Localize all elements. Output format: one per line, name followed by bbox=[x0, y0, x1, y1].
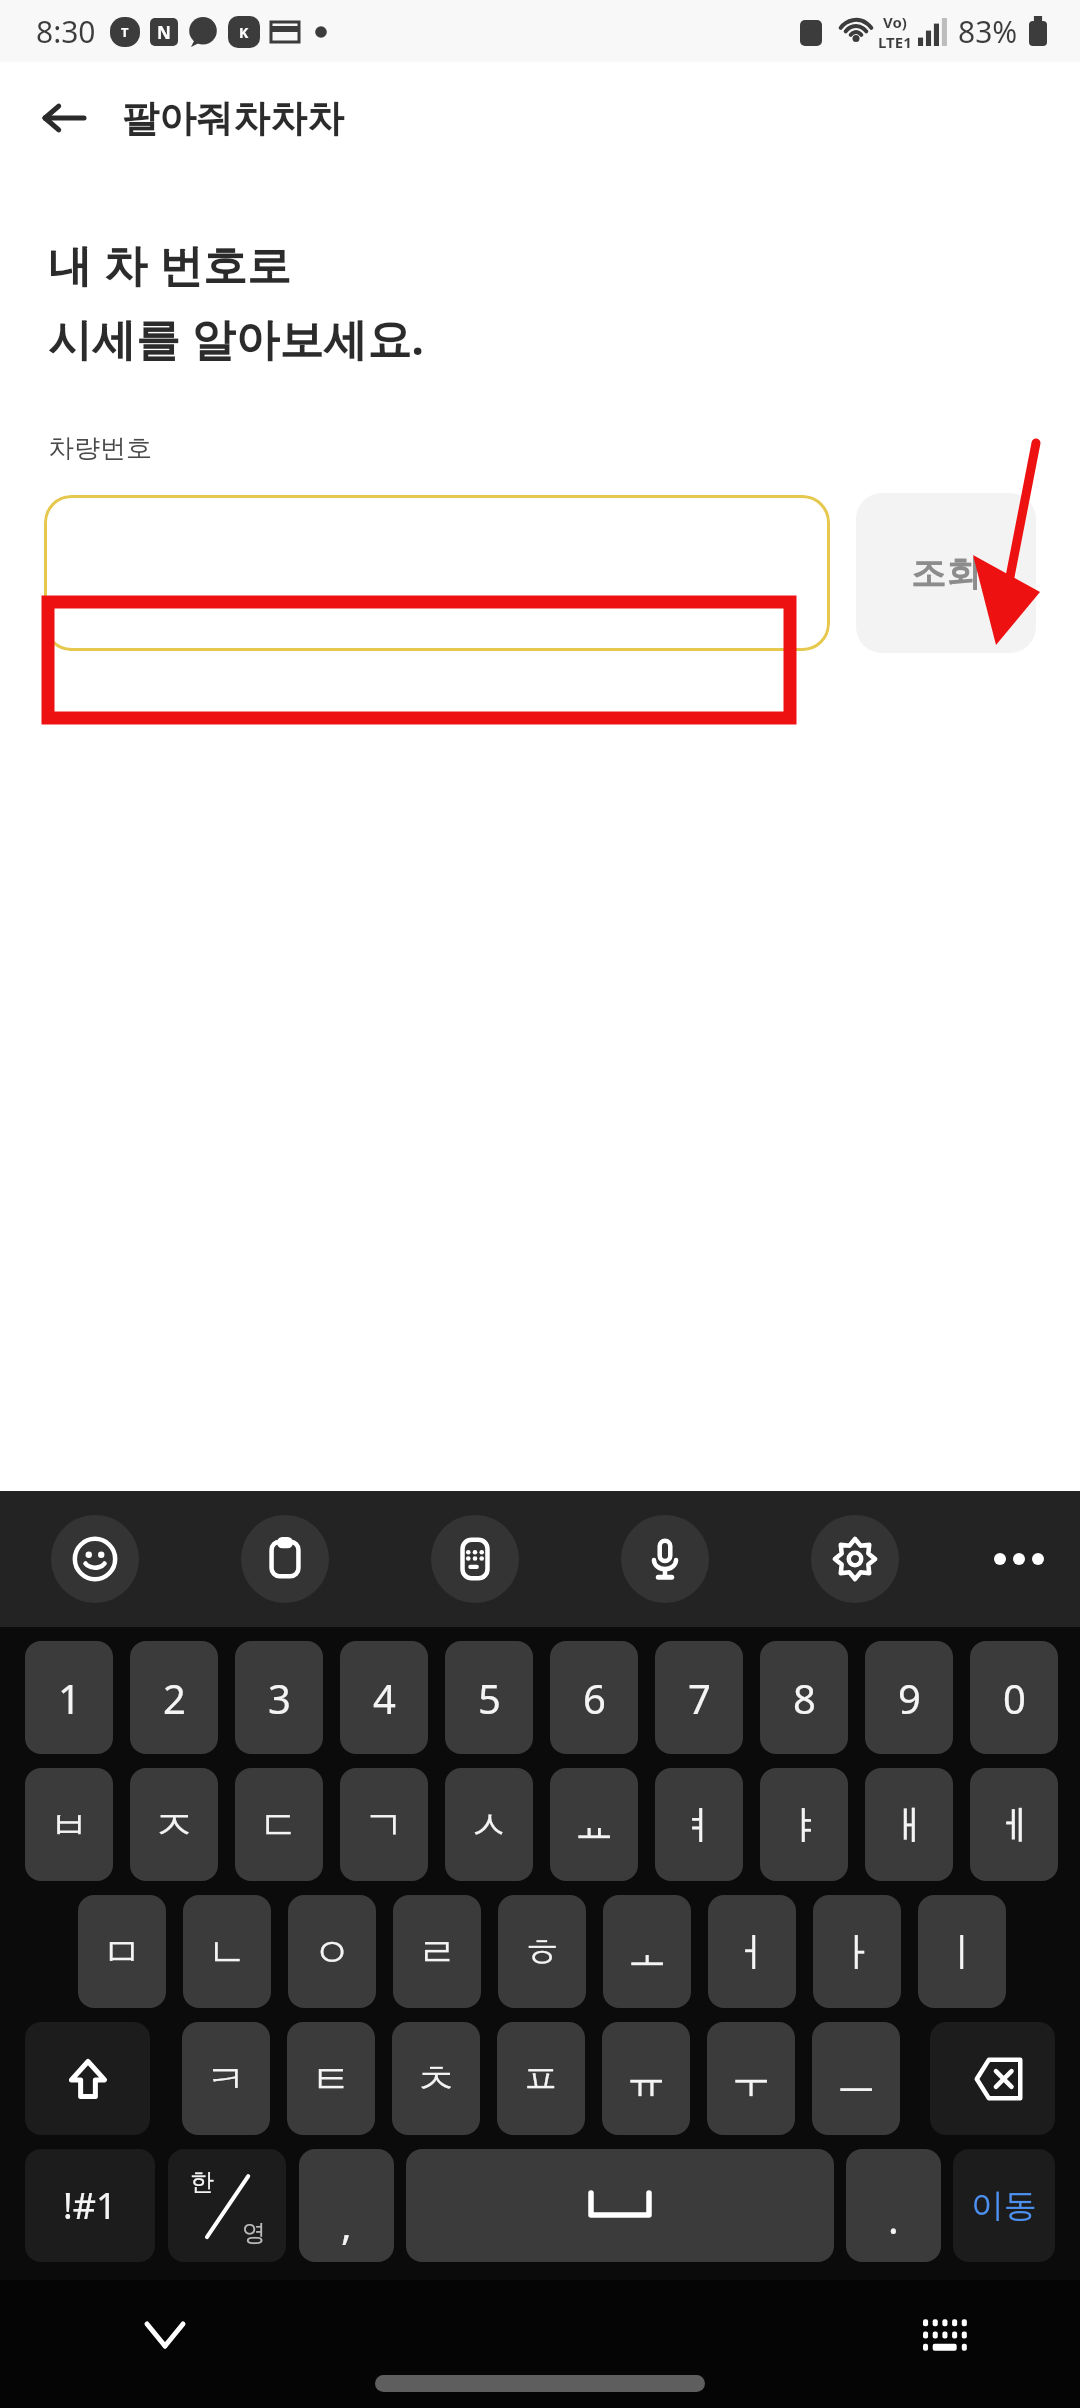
button[interactable]: Hide keyboard bbox=[120, 2290, 210, 2380]
button[interactable]: More options bbox=[975, 1515, 1063, 1603]
button[interactable]: 6 bbox=[550, 1641, 638, 1754]
staticText: 7 bbox=[688, 1671, 711, 1725]
staticText: ㄴ bbox=[207, 1927, 247, 1977]
button[interactable]: ㅈ bbox=[130, 1768, 218, 1881]
button[interactable]: ㅂ bbox=[25, 1768, 113, 1881]
staticText: !#1 bbox=[63, 2181, 117, 2230]
staticText: ㅈ bbox=[154, 1800, 194, 1850]
staticText: ㅇ bbox=[312, 1927, 352, 1977]
button[interactable]: 이동 bbox=[953, 2149, 1055, 2262]
button[interactable]: ㅌ bbox=[287, 2022, 375, 2135]
staticText: 영 bbox=[242, 2218, 266, 2248]
button[interactable]: Clipboard bbox=[241, 1515, 329, 1603]
staticText: , bbox=[341, 2197, 352, 2251]
button[interactable]: Voice input bbox=[621, 1515, 709, 1603]
button[interactable]: ㅋ bbox=[182, 2022, 270, 2135]
button[interactable]: 2 bbox=[130, 1641, 218, 1754]
staticText: ㅏ bbox=[837, 1927, 877, 1977]
staticText: ㅌ bbox=[311, 2054, 351, 2104]
button[interactable]: ㅠ bbox=[602, 2022, 690, 2135]
button[interactable] bbox=[44, 495, 830, 651]
staticText: . bbox=[888, 2191, 899, 2245]
button[interactable]: 9 bbox=[865, 1641, 953, 1754]
button[interactable]: ㅗ bbox=[603, 1895, 691, 2008]
button[interactable]: ㅡ bbox=[812, 2022, 900, 2135]
staticText: ㅛ bbox=[574, 1800, 614, 1850]
button[interactable]: Backspace bbox=[930, 2022, 1055, 2135]
button[interactable]: ㅏ bbox=[813, 1895, 901, 2008]
staticText: 83% bbox=[958, 11, 1018, 52]
button[interactable]: ㅑ bbox=[760, 1768, 848, 1881]
button[interactable]: 8 bbox=[760, 1641, 848, 1754]
staticText: 6 bbox=[583, 1671, 606, 1725]
button[interactable]: ㄹ bbox=[393, 1895, 481, 2008]
staticText: ㅣ bbox=[942, 1927, 982, 1977]
button[interactable]: ㄴ bbox=[183, 1895, 271, 2008]
staticText: ㅜ bbox=[731, 2054, 771, 2104]
button[interactable]: 7 bbox=[655, 1641, 743, 1754]
button[interactable]: ㅛ bbox=[550, 1768, 638, 1881]
button[interactable]: ㅕ bbox=[655, 1768, 743, 1881]
button[interactable]: 0 bbox=[970, 1641, 1058, 1754]
staticText: 9 bbox=[898, 1671, 921, 1725]
staticText: ㅂ bbox=[49, 1800, 89, 1850]
button[interactable]: Space bbox=[406, 2149, 834, 2262]
button[interactable]: ㅇ bbox=[288, 1895, 376, 2008]
staticText: ㅕ bbox=[679, 1800, 719, 1850]
button[interactable]: 1 bbox=[25, 1641, 113, 1754]
button[interactable]: 4 bbox=[340, 1641, 428, 1754]
staticText: ㅎ bbox=[522, 1927, 562, 1977]
staticText: 1 bbox=[58, 1671, 81, 1725]
button[interactable]: ㅐ bbox=[865, 1768, 953, 1881]
staticText: ㄱ bbox=[364, 1800, 404, 1850]
staticText: 내 차 번호로 bbox=[48, 234, 291, 294]
staticText: 이동 bbox=[971, 2185, 1037, 2227]
button[interactable]: . bbox=[846, 2149, 941, 2262]
button[interactable]: Back bbox=[26, 80, 102, 156]
staticText: ㅍ bbox=[521, 2054, 561, 2104]
button[interactable]: ㅔ bbox=[970, 1768, 1058, 1881]
staticText: ㅋ bbox=[206, 2054, 246, 2104]
staticText: 4 bbox=[373, 1671, 396, 1725]
staticText: 팔아줘차차차 bbox=[122, 95, 344, 142]
staticText: 0 bbox=[1003, 1671, 1026, 1725]
button[interactable]: Korean English toggle bbox=[168, 2149, 286, 2262]
button[interactable]: Keyboard modes bbox=[431, 1515, 519, 1603]
button[interactable]: ㅍ bbox=[497, 2022, 585, 2135]
button[interactable]: ㅜ bbox=[707, 2022, 795, 2135]
staticText: ㅁ bbox=[102, 1927, 142, 1977]
button[interactable]: ㅅ bbox=[445, 1768, 533, 1881]
staticText: ㅑ bbox=[784, 1800, 824, 1850]
button[interactable]: ㅊ bbox=[392, 2022, 480, 2135]
staticText: 조회 bbox=[911, 551, 981, 595]
staticText: 5 bbox=[478, 1671, 501, 1725]
staticText: K bbox=[239, 23, 249, 42]
staticText: ㅠ bbox=[626, 2054, 666, 2104]
staticText: 시세를 알아보세요. bbox=[48, 308, 424, 368]
staticText: ㄹ bbox=[417, 1927, 457, 1977]
staticText: N bbox=[157, 21, 171, 44]
staticText: T bbox=[121, 23, 129, 41]
button[interactable]: 5 bbox=[445, 1641, 533, 1754]
button[interactable]: !#1 bbox=[25, 2149, 155, 2262]
button[interactable]: ㅣ bbox=[918, 1895, 1006, 2008]
staticText: 한 bbox=[190, 2167, 214, 2197]
button[interactable]: Change keyboard bbox=[902, 2290, 992, 2380]
button[interactable]: , bbox=[299, 2149, 394, 2262]
staticText: ㅐ bbox=[889, 1800, 929, 1850]
button[interactable]: Emoji bbox=[51, 1515, 139, 1603]
button[interactable]: Shift bbox=[25, 2022, 150, 2135]
button[interactable]: ㅁ bbox=[78, 1895, 166, 2008]
staticText: ㅓ bbox=[732, 1927, 772, 1977]
button[interactable]: Settings bbox=[811, 1515, 899, 1603]
button[interactable]: 3 bbox=[235, 1641, 323, 1754]
button[interactable]: ㄱ bbox=[340, 1768, 428, 1881]
button[interactable]: ㅓ bbox=[708, 1895, 796, 2008]
staticText: 8 bbox=[793, 1671, 816, 1725]
staticText: 차량번호 bbox=[48, 432, 152, 465]
staticText: 2 bbox=[163, 1671, 186, 1725]
staticText: 3 bbox=[268, 1671, 291, 1725]
button[interactable]: 조회 bbox=[856, 493, 1036, 653]
button[interactable]: ㅎ bbox=[498, 1895, 586, 2008]
button[interactable]: ㄷ bbox=[235, 1768, 323, 1881]
